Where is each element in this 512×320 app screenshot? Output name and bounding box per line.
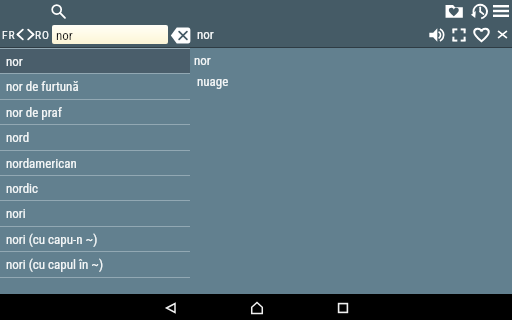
button[interactable]: nor bbox=[52, 25, 168, 44]
button[interactable]: Menu bbox=[491, 1, 511, 21]
button[interactable]: Clear text bbox=[170, 27, 191, 44]
button[interactable]: nordic bbox=[0, 175, 190, 201]
staticText: nordamerican bbox=[6, 156, 77, 171]
button[interactable]: History bbox=[466, 1, 491, 21]
staticText: nord bbox=[6, 130, 30, 145]
button[interactable]: nori bbox=[0, 200, 190, 226]
staticText: nor bbox=[194, 53, 211, 68]
staticText: nor de praf bbox=[6, 105, 62, 120]
staticText: nordic bbox=[6, 181, 39, 196]
button[interactable]: nori (cu capul în ~) bbox=[0, 251, 190, 277]
button[interactable]: Close bbox=[493, 25, 511, 44]
staticText: nor bbox=[197, 27, 214, 42]
button[interactable]: Back bbox=[149, 294, 192, 320]
staticText: nori (cu capu-n ~) bbox=[6, 232, 98, 247]
staticText: RO bbox=[35, 28, 50, 41]
button[interactable]: Search bbox=[47, 1, 69, 21]
button[interactable]: Add to favourites bbox=[470, 25, 493, 44]
button[interactable]: Fullscreen bbox=[448, 25, 470, 44]
button[interactable]: nordamerican bbox=[0, 150, 190, 176]
staticText: nor bbox=[56, 28, 73, 43]
button[interactable]: Favourites bbox=[442, 1, 466, 21]
staticText: nori (cu capul în ~) bbox=[6, 257, 104, 272]
button[interactable]: nori (cu capu-n ~) bbox=[0, 226, 190, 252]
button[interactable]: Home bbox=[235, 294, 278, 320]
staticText: FR bbox=[2, 28, 16, 41]
staticText: nor bbox=[6, 54, 23, 69]
button[interactable]: Pronounce bbox=[426, 25, 448, 44]
button[interactable]: FR bbox=[0, 25, 50, 44]
button[interactable]: nord bbox=[0, 124, 190, 150]
button[interactable]: Recent apps bbox=[321, 294, 364, 320]
button[interactable]: nor de furtună bbox=[0, 73, 190, 99]
staticText: nor de furtună bbox=[6, 79, 79, 94]
button[interactable]: nor bbox=[0, 48, 190, 74]
button[interactable]: nor de praf bbox=[0, 99, 190, 125]
staticText: nuage bbox=[197, 74, 229, 89]
staticText: nori bbox=[6, 206, 26, 221]
